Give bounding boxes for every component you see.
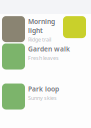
staticText: Garden walk	[28, 44, 70, 53]
button[interactable]: Park loop	[0, 83, 91, 110]
staticText: Sunny skies	[28, 94, 57, 101]
button[interactable]: Garden walk	[0, 43, 91, 70]
staticText: Park loop	[28, 84, 59, 93]
button[interactable]: Morning light	[0, 16, 91, 43]
staticText: Ridge trail	[28, 36, 51, 43]
staticText: Fresh leaves	[28, 54, 59, 61]
staticText: Morning light	[28, 17, 55, 35]
